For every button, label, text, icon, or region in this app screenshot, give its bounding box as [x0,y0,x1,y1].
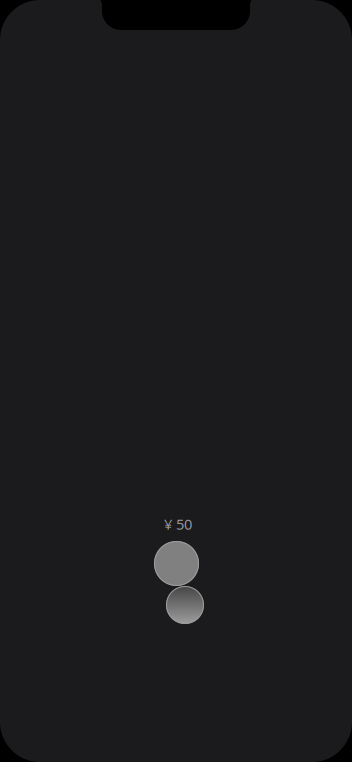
staticText: ¥ 50 [164,514,192,534]
button[interactable]: Drop coin [0,0,352,762]
